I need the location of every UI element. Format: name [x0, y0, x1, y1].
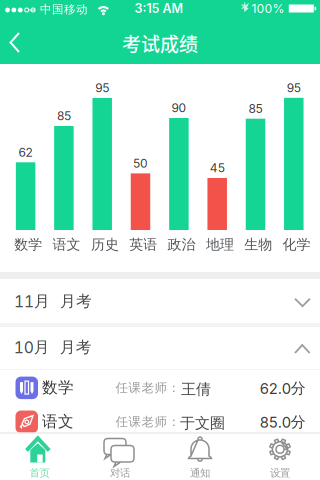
staticText: 首页	[29, 466, 49, 479]
staticText: 85	[248, 101, 262, 116]
staticText: 3:15 AM	[134, 1, 183, 16]
staticText: 任课老师：	[115, 380, 180, 396]
staticText: 85	[57, 109, 71, 123]
staticText: 化学	[282, 236, 310, 253]
staticText: 62	[19, 145, 33, 159]
staticText: 设置	[270, 466, 290, 479]
staticText: 于文圈	[180, 414, 225, 433]
button[interactable]: 语文	[0, 404, 320, 440]
staticText: 85.0分	[260, 413, 306, 431]
staticText: 生物	[244, 236, 272, 253]
staticText: 语文	[53, 236, 81, 253]
button[interactable]: 首页	[0, 433, 80, 479]
button[interactable]: 通知	[160, 433, 240, 479]
staticText: 11月 月考	[14, 291, 92, 311]
button[interactable]: 对话	[80, 433, 160, 479]
staticText: 数学	[42, 378, 74, 397]
staticText: 任课老师：	[115, 414, 180, 430]
staticText: 90	[171, 101, 186, 115]
staticText: 对话	[110, 466, 130, 479]
staticText: 考试成绩	[122, 29, 198, 57]
button[interactable]: 10月 月考	[0, 327, 320, 370]
staticText: 通知	[190, 466, 210, 479]
staticText: 62.0分	[260, 379, 306, 397]
staticText: 45	[210, 161, 225, 175]
button[interactable]: 11月 月考	[0, 279, 320, 320]
button[interactable]: 数学	[0, 370, 320, 406]
staticText: 50	[133, 156, 148, 171]
staticText: 政治	[168, 236, 196, 253]
staticText: 95	[287, 80, 301, 95]
staticText: 数学	[14, 236, 42, 253]
staticText: 地理	[206, 236, 234, 253]
staticText: 王倩	[181, 380, 211, 399]
staticText: 英语	[129, 236, 157, 253]
staticText: 10月 月考	[14, 337, 92, 357]
staticText: 语文	[42, 412, 74, 431]
button[interactable]: 设置	[240, 433, 320, 479]
button[interactable]: Back	[0, 19, 36, 64]
staticText: 中国移动	[40, 2, 88, 17]
staticText: 100%	[251, 1, 284, 16]
staticText: 95	[95, 81, 109, 95]
staticText: 历史	[91, 236, 119, 253]
